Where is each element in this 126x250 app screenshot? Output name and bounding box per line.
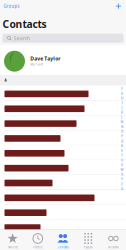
staticText: C xyxy=(121,72,123,76)
button[interactable]: Search xyxy=(2,34,123,43)
button[interactable] xyxy=(0,101,126,116)
staticText: N xyxy=(121,125,123,129)
staticText: Q xyxy=(121,139,123,143)
staticText: Keypad xyxy=(84,246,93,249)
staticText: R xyxy=(121,144,123,148)
button[interactable] xyxy=(0,205,126,220)
button[interactable] xyxy=(0,130,126,145)
staticText: K xyxy=(121,110,123,115)
staticText: Voicemail xyxy=(108,246,119,249)
button[interactable] xyxy=(0,86,126,101)
button[interactable]: Voicemail xyxy=(101,230,126,250)
staticText: M xyxy=(120,120,123,124)
button[interactable]: Groups xyxy=(0,2,22,10)
staticText: My Card xyxy=(30,62,43,66)
staticText: Recents xyxy=(33,246,42,249)
staticText: # xyxy=(121,187,123,191)
button[interactable]: Recents xyxy=(25,230,50,250)
button[interactable]: Favorites xyxy=(0,230,25,250)
staticText: U xyxy=(121,158,123,162)
button[interactable] xyxy=(0,220,126,234)
button[interactable]: Add Contact xyxy=(111,2,125,11)
staticText: Z xyxy=(121,182,123,186)
button[interactable] xyxy=(0,175,126,190)
staticText: V xyxy=(121,163,123,167)
staticText: Contacts xyxy=(2,17,46,31)
staticText: O xyxy=(121,130,123,134)
staticText: X xyxy=(121,172,123,177)
staticText: A xyxy=(4,78,6,82)
button[interactable] xyxy=(0,160,126,175)
staticText: S xyxy=(121,149,123,153)
staticText: Contacts xyxy=(57,246,68,249)
button[interactable]: Dave Taylor xyxy=(0,45,126,75)
staticText: T xyxy=(121,153,123,158)
button[interactable]: Contacts xyxy=(50,230,76,250)
staticText: L xyxy=(121,115,123,119)
button[interactable] xyxy=(0,190,126,205)
button[interactable] xyxy=(0,145,126,160)
staticText: Groups xyxy=(3,3,19,9)
staticText: G xyxy=(121,91,123,96)
staticText: W xyxy=(120,168,123,172)
staticText: Search xyxy=(14,35,30,42)
button[interactable] xyxy=(0,116,126,130)
staticText: H xyxy=(121,96,123,100)
staticText: F xyxy=(121,87,123,91)
staticText: Dave Taylor xyxy=(30,55,60,62)
button[interactable]: Keypad xyxy=(76,230,101,250)
staticText: Favorites xyxy=(8,246,18,249)
staticText: P xyxy=(121,134,123,138)
staticText: Y xyxy=(121,177,123,181)
